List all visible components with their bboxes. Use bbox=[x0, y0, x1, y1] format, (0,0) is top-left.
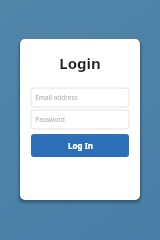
button[interactable]: Email address bbox=[31, 88, 129, 107]
staticText: Email address bbox=[35, 93, 78, 102]
button[interactable]: Password bbox=[31, 110, 129, 129]
staticText: Login bbox=[59, 53, 101, 73]
staticText: Log In bbox=[68, 140, 93, 151]
button[interactable]: Log In bbox=[31, 134, 129, 157]
staticText: Password bbox=[35, 115, 65, 124]
